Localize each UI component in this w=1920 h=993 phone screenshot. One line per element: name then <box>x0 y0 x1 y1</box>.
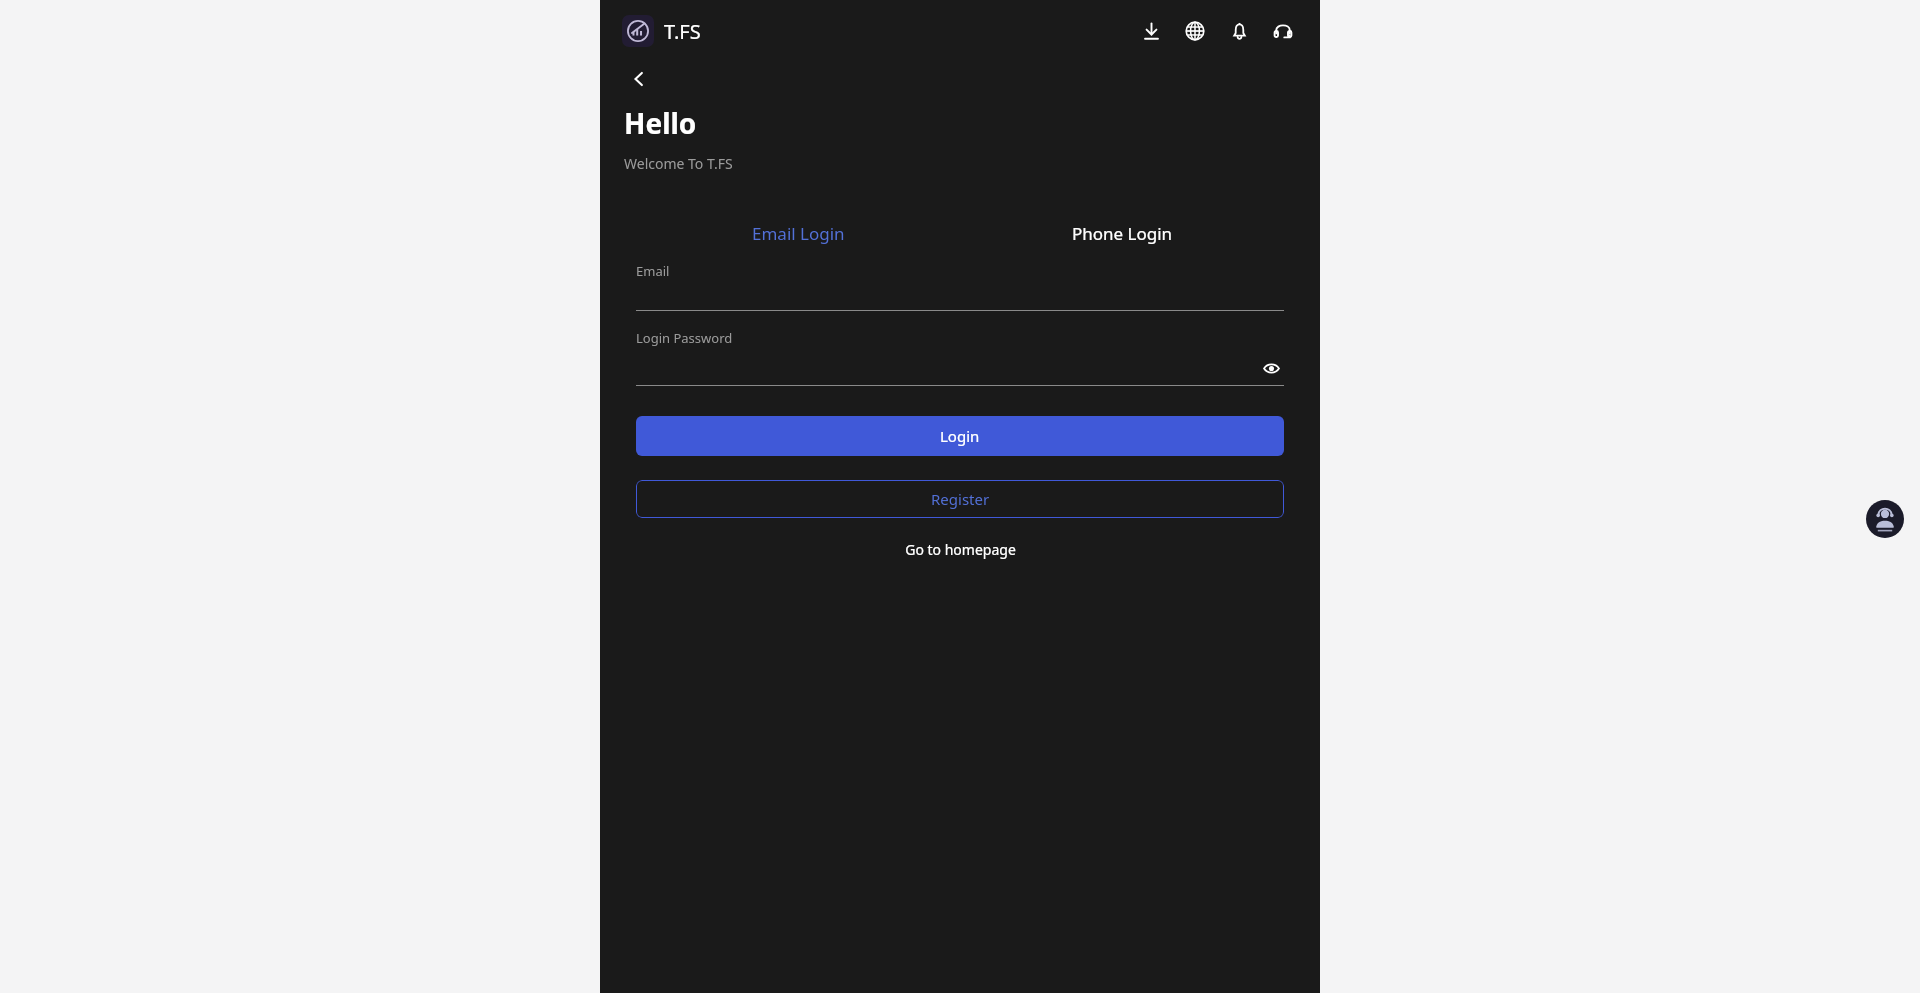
button[interactable]: Download <box>1136 16 1166 46</box>
button[interactable]: T.FS <box>622 15 701 47</box>
button[interactable]: Email Login <box>636 216 960 250</box>
staticText: Hello <box>624 104 697 142</box>
button[interactable]: Language <box>1180 16 1210 46</box>
staticText: Phone Login <box>1072 222 1173 245</box>
staticText: Register <box>931 489 990 509</box>
staticText: Login Password <box>636 329 733 347</box>
staticText: Welcome To T.FS <box>624 154 733 173</box>
button[interactable]: Go to homepage <box>905 540 1016 559</box>
button[interactable]: Customer support <box>1866 500 1904 538</box>
staticText: T.FS <box>664 18 701 45</box>
button[interactable]: Register <box>636 480 1284 518</box>
staticText: Login <box>940 426 980 446</box>
staticText: Email <box>636 262 670 280</box>
button[interactable]: Support <box>1268 16 1298 46</box>
staticText: Email Login <box>752 222 845 245</box>
button[interactable]: Phone Login <box>960 216 1284 250</box>
button[interactable]: Notifications <box>1224 16 1254 46</box>
button[interactable]: Login <box>636 416 1284 456</box>
button[interactable]: Back <box>622 62 656 96</box>
button[interactable]: Show password <box>1258 355 1284 381</box>
